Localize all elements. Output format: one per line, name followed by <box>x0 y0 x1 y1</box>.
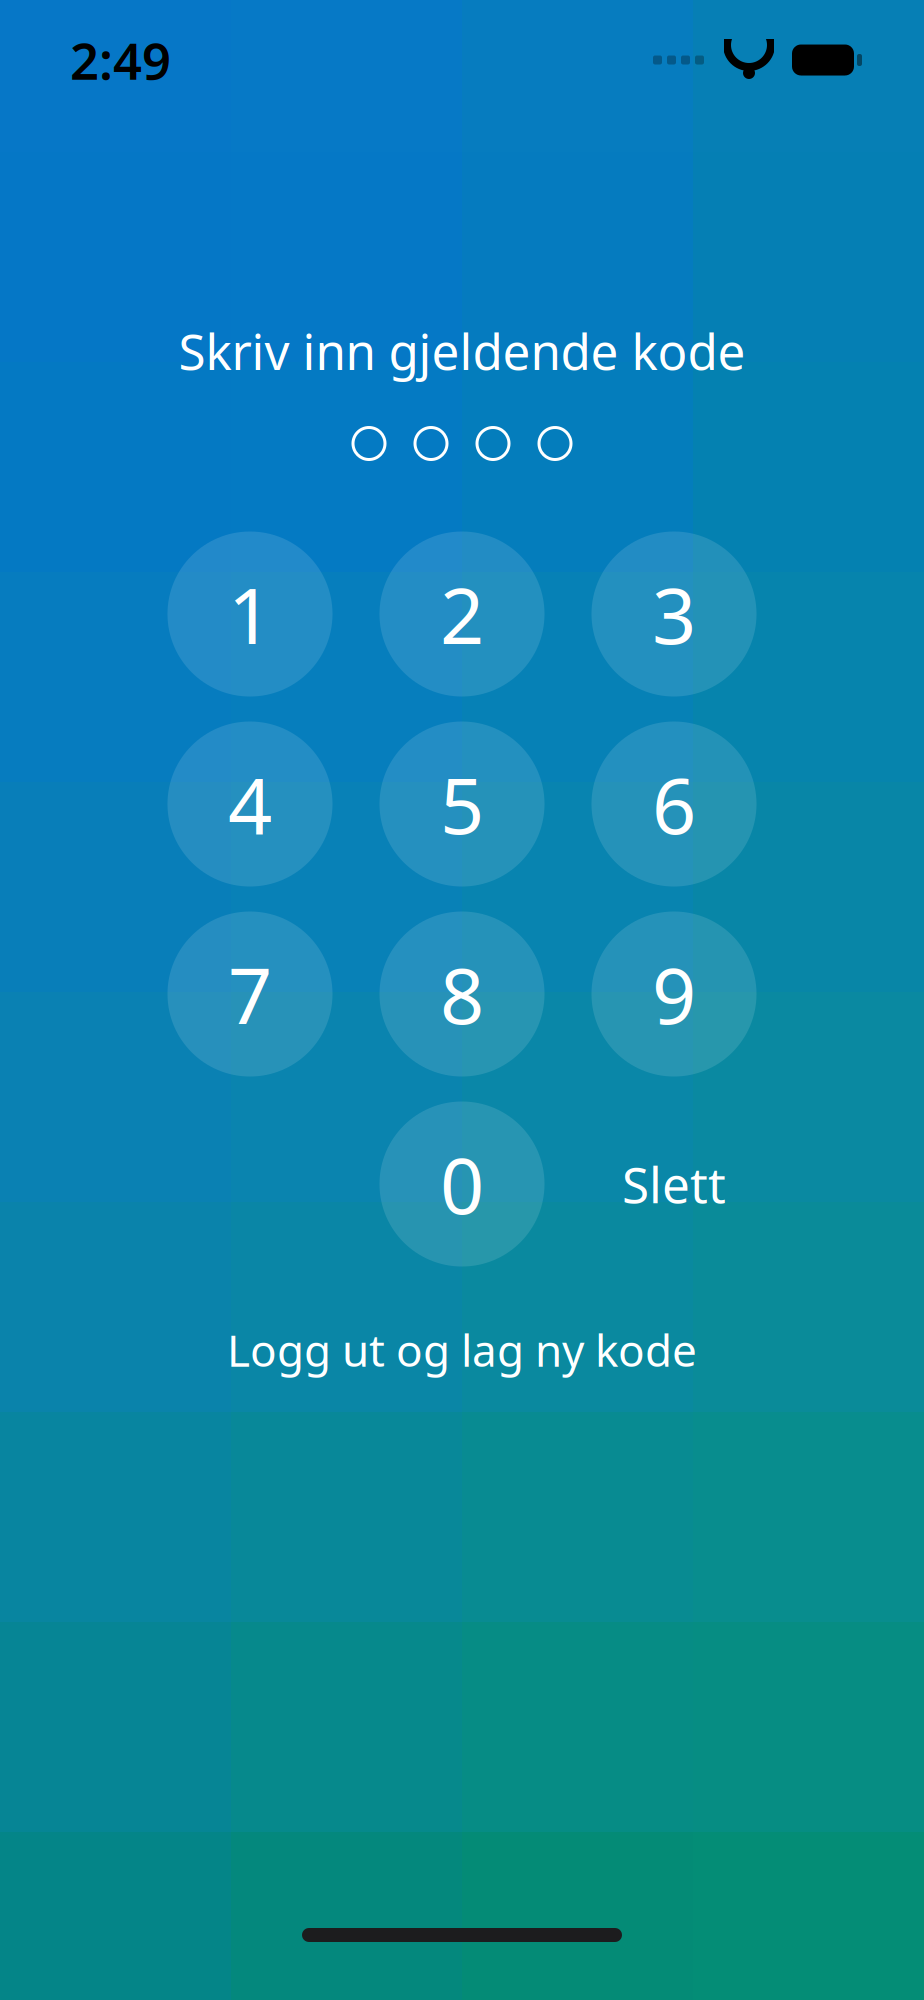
staticText: 3 <box>652 563 696 665</box>
staticText: 5 <box>440 753 484 855</box>
staticText: 0 <box>440 1133 484 1235</box>
staticText: 9 <box>652 943 696 1045</box>
button[interactable]: 8 <box>379 911 544 1076</box>
button[interactable]: 6 <box>591 721 756 886</box>
staticText: 1 <box>228 563 272 665</box>
button[interactable]: 1 <box>167 531 332 696</box>
staticText: 2:49 <box>70 26 171 94</box>
staticText: 2 <box>440 563 484 665</box>
button[interactable]: 4 <box>167 721 332 886</box>
button[interactable]: 0 <box>379 1101 544 1266</box>
staticText: 6 <box>652 753 696 855</box>
staticText: 7 <box>228 943 272 1045</box>
button[interactable]: 3 <box>591 531 756 696</box>
staticText: 8 <box>440 943 484 1045</box>
button[interactable]: Slett <box>591 1101 756 1266</box>
staticText: Skriv inn gjeldende kode <box>178 318 745 383</box>
button[interactable]: 2 <box>379 531 544 696</box>
button[interactable]: 9 <box>591 911 756 1076</box>
button[interactable]: Logg ut og lag ny kode <box>197 1306 727 1393</box>
button[interactable]: 5 <box>379 721 544 886</box>
staticText: Logg ut og lag ny kode <box>227 1320 697 1379</box>
button[interactable]: 7 <box>167 911 332 1076</box>
staticText: Slett <box>622 1151 726 1217</box>
staticText: 4 <box>228 753 272 855</box>
